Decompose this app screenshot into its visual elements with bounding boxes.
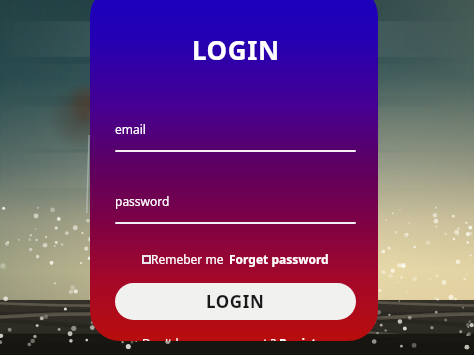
staticText: LOGIN — [206, 290, 265, 313]
staticText: Don't have an account ? Register — [142, 335, 329, 341]
staticText: LOGIN — [192, 32, 280, 67]
staticText: Remeber me — [151, 251, 224, 267]
button[interactable]: Forget password — [229, 251, 329, 267]
button[interactable]: email — [115, 121, 356, 152]
staticText: password — [115, 193, 170, 209]
button[interactable]: LOGIN — [115, 283, 356, 320]
button[interactable]: Don't have an account ? Register — [115, 335, 356, 341]
staticText: email — [115, 121, 146, 137]
button[interactable]: password — [115, 193, 356, 224]
staticText: Forget password — [229, 251, 329, 267]
button[interactable]: Remeber me — [142, 251, 224, 267]
